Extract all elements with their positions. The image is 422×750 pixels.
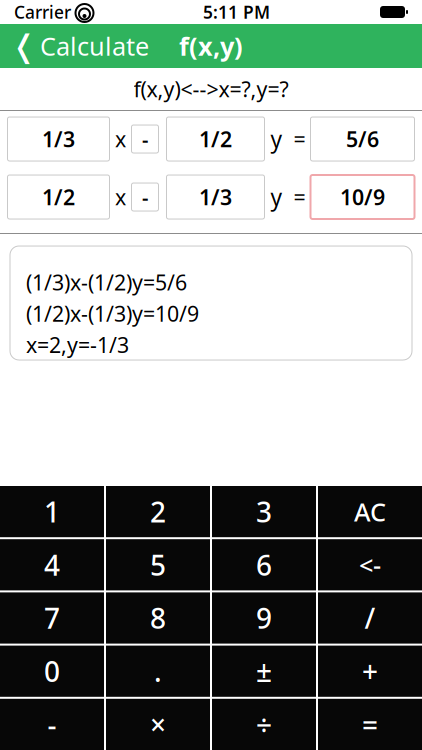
- staticText: 5: [150, 546, 166, 583]
- button[interactable]: =: [318, 699, 422, 750]
- button[interactable]: 5/6: [310, 117, 414, 161]
- staticText: =: [362, 706, 378, 743]
- button[interactable]: -: [0, 699, 104, 750]
- staticText: =: [293, 125, 305, 153]
- button[interactable]: ÷: [212, 699, 316, 750]
- staticText: -: [142, 126, 148, 152]
- staticText: ❬: [11, 29, 37, 63]
- button[interactable]: 3: [212, 486, 316, 537]
- button[interactable]: AC: [318, 486, 422, 537]
- staticText: 0: [44, 653, 60, 690]
- staticText: 6: [256, 546, 272, 583]
- button[interactable]: 0: [0, 646, 104, 697]
- button[interactable]: -: [131, 125, 158, 153]
- staticText: ×: [150, 706, 166, 743]
- staticText: 1: [44, 493, 60, 530]
- button[interactable]: 1/2: [166, 117, 264, 161]
- staticText: 3: [256, 493, 272, 530]
- button[interactable]: 2: [106, 486, 210, 537]
- button[interactable]: 1/2: [7, 175, 109, 219]
- staticText: y: [270, 124, 282, 154]
- staticText: y: [270, 182, 282, 212]
- staticText: 1/2: [199, 125, 232, 153]
- staticText: f(x,y)<-->x=?,y=?: [133, 75, 288, 103]
- button[interactable]: /: [318, 592, 422, 644]
- staticText: 1/3: [199, 183, 232, 211]
- button[interactable]: 6: [212, 539, 316, 590]
- staticText: ÷: [256, 706, 272, 743]
- staticText: (1/2)x-(1/3)y=10/9: [26, 299, 199, 328]
- staticText: 10/9: [340, 183, 385, 211]
- button[interactable]: 1: [0, 486, 104, 537]
- button[interactable]: ±: [212, 646, 316, 697]
- button[interactable]: ❬: [0, 24, 160, 68]
- button[interactable]: 10/9: [310, 175, 414, 219]
- staticText: Calculate: [40, 29, 149, 63]
- staticText: 4: [44, 546, 60, 583]
- staticText: 1/3: [42, 125, 75, 153]
- button[interactable]: -: [131, 183, 158, 211]
- button[interactable]: 1/3: [166, 175, 264, 219]
- button[interactable]: <-: [318, 539, 422, 590]
- staticText: Carrier: [14, 0, 71, 23]
- staticText: <-: [359, 548, 381, 582]
- button[interactable]: 4: [0, 539, 104, 590]
- staticText: -: [142, 184, 148, 210]
- staticText: .: [154, 653, 162, 690]
- staticText: x: [115, 125, 126, 153]
- staticText: 7: [44, 599, 60, 637]
- staticText: 1/2: [42, 183, 75, 211]
- staticText: -: [47, 706, 56, 743]
- button[interactable]: +: [318, 646, 422, 697]
- staticText: f(x,y): [179, 29, 243, 63]
- staticText: 8: [150, 599, 166, 637]
- staticText: AC: [354, 495, 386, 528]
- staticText: 5/6: [346, 125, 379, 153]
- button[interactable]: 1/3: [7, 117, 109, 161]
- staticText: =: [293, 183, 305, 211]
- staticText: +: [362, 653, 378, 690]
- button[interactable]: .: [106, 646, 210, 697]
- staticText: 2: [150, 493, 166, 530]
- button[interactable]: 7: [0, 592, 104, 644]
- button[interactable]: 9: [212, 592, 316, 644]
- button[interactable]: 8: [106, 592, 210, 644]
- staticText: /: [364, 599, 375, 637]
- button[interactable]: ×: [106, 699, 210, 750]
- staticText: x=2,y=-1/3: [26, 331, 129, 359]
- staticText: (1/3)x-(1/2)y=5/6: [26, 268, 187, 296]
- button[interactable]: 5: [106, 539, 210, 590]
- staticText: x: [115, 183, 126, 211]
- staticText: ±: [256, 653, 272, 690]
- staticText: 9: [256, 599, 272, 637]
- staticText: 5:11 PM: [203, 0, 270, 23]
